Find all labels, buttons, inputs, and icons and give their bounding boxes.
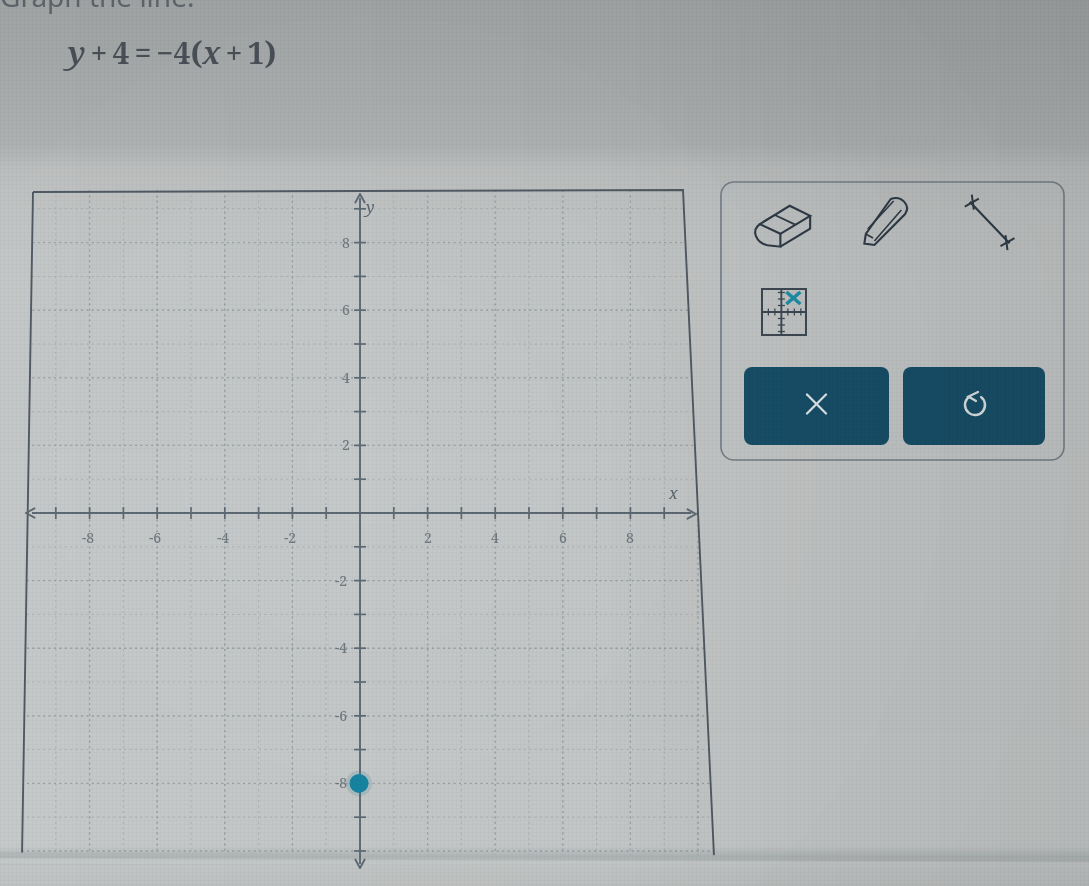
button[interactable]: Eraser [750,203,812,249]
staticText: 4 [491,528,499,547]
staticText: 2 [342,435,350,454]
staticText: -8 [335,773,348,792]
button[interactable]: Undo [903,367,1045,445]
staticText: Graph the line. [0,0,195,15]
button[interactable]: Pencil [861,197,909,247]
staticText: 4 [342,368,350,387]
staticText: x [669,482,678,504]
staticText: 6 [559,528,567,547]
staticText: -2 [335,571,348,590]
button[interactable]: Clear [744,367,889,445]
staticText: y + 4 = −4(x + 1) [68,32,277,73]
staticText: -4 [335,638,348,657]
staticText: -8 [82,528,95,547]
staticText: 8 [626,528,634,547]
staticText: -6 [335,706,348,725]
staticText: 8 [342,233,350,252]
staticText: y [366,196,375,218]
staticText: -2 [284,528,297,547]
staticText: -4 [217,528,230,547]
staticText: 6 [342,300,350,319]
staticText: -6 [149,528,162,547]
staticText: 2 [424,528,432,547]
button[interactable]: Plot point [761,288,809,338]
button[interactable]: Line [957,195,1021,251]
